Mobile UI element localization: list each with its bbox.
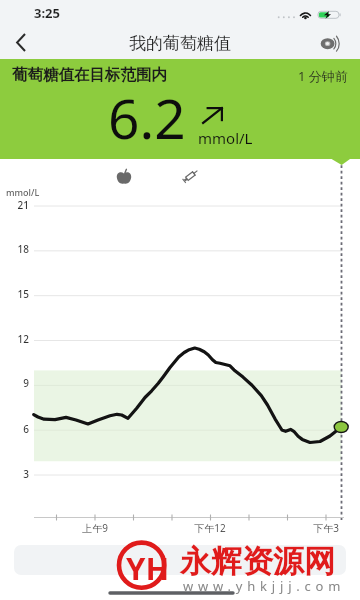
staticText: YH	[126, 547, 170, 589]
staticText: 永辉资源网	[180, 542, 335, 581]
staticText: 12	[17, 332, 29, 346]
staticText: 葡萄糖值在目标范围内	[12, 65, 167, 85]
staticText: 下午12	[194, 521, 226, 535]
staticText: 3	[23, 467, 29, 481]
staticText: 9	[23, 376, 29, 390]
staticText: 21	[17, 198, 29, 212]
staticText: 15	[17, 287, 29, 301]
button[interactable]: Food entry	[114, 169, 134, 185]
staticText: 上午9	[82, 521, 108, 535]
staticText: 我的葡萄糖值	[129, 33, 231, 54]
staticText: mmol/L	[6, 186, 40, 198]
staticText: 1 分钟前	[298, 67, 348, 85]
button[interactable]	[14, 545, 346, 575]
staticText: www.yhkjjj.com	[183, 577, 346, 595]
staticText: 下午3	[313, 521, 339, 535]
staticText: mmol/L	[198, 128, 253, 148]
staticText: 6	[23, 422, 29, 436]
staticText: 3:25	[34, 4, 60, 22]
button[interactable]: Scan sensor	[316, 26, 360, 59]
staticText: 18	[17, 242, 29, 256]
staticText: 6.2	[108, 80, 186, 155]
button[interactable]: Back	[0, 26, 42, 59]
button[interactable]: Insulin entry	[181, 168, 200, 184]
